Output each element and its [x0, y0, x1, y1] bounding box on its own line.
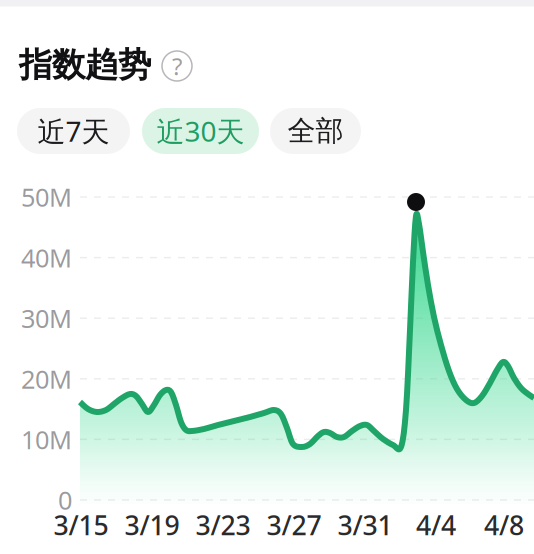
staticText: 近30天	[156, 112, 244, 150]
staticText: ?	[172, 50, 182, 82]
staticText: 30M	[21, 301, 72, 335]
staticText: 3/19	[124, 507, 179, 543]
staticText: 全部	[287, 114, 343, 148]
staticText: 3/15	[53, 507, 108, 543]
button[interactable]: 近7天	[17, 108, 130, 154]
button[interactable]: 近30天	[142, 108, 259, 154]
button[interactable]: 帮助	[162, 51, 192, 81]
staticText: 3/27	[266, 507, 321, 543]
staticText: 指数趋势	[19, 44, 151, 85]
button[interactable]: 全部	[270, 108, 361, 154]
staticText: 10M	[21, 423, 72, 456]
staticText: 40M	[21, 241, 72, 274]
staticText: 3/23	[195, 507, 250, 543]
staticText: 4/4	[416, 507, 456, 543]
staticText: 近7天	[37, 112, 109, 150]
staticText: 20M	[21, 362, 72, 396]
staticText: 0	[58, 483, 72, 517]
staticText: 4/8	[484, 507, 524, 543]
staticText: 50M	[21, 180, 72, 214]
staticText: 3/31	[337, 507, 392, 543]
